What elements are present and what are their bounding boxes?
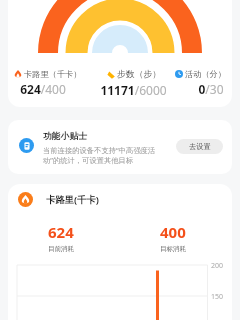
staticText: 624: [48, 222, 74, 242]
staticText: 0/30: [198, 81, 224, 97]
staticText: 功能小贴士: [43, 131, 87, 142]
staticText: 当前连接的设备不支持“中高强度活动”的统计，可设置其他目标: [43, 145, 157, 165]
button[interactable]: 功能小贴士: [8, 120, 232, 174]
button[interactable]: 卡路里(千卡): [18, 192, 99, 207]
staticText: 去设置: [189, 142, 211, 151]
button[interactable]: 活动（分）: [175, 69, 226, 97]
staticText: 卡路里（千卡）: [24, 69, 82, 79]
staticText: 目前消耗: [48, 245, 74, 253]
staticText: 400: [160, 222, 186, 242]
button[interactable]: 去设置: [176, 139, 223, 154]
staticText: 卡路里(千卡): [46, 193, 99, 206]
staticText: 150: [211, 292, 224, 302]
other: 功能小贴士: [19, 138, 34, 153]
staticText: 624/400: [20, 81, 66, 97]
staticText: 步数（步）: [117, 69, 161, 80]
staticText: 目标消耗: [160, 245, 186, 253]
staticText: 11171/6000: [100, 82, 167, 98]
button[interactable]: 步数（步）: [100, 69, 167, 98]
button[interactable]: 卡路里（千卡）: [14, 69, 82, 97]
staticText: 活动（分）: [185, 69, 226, 79]
staticText: 200: [211, 261, 224, 271]
